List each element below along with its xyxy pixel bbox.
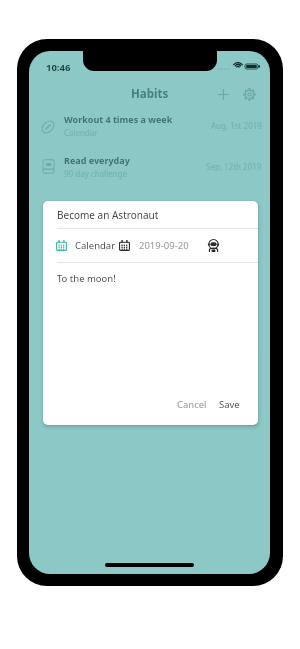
staticText: Save <box>219 398 240 411</box>
button[interactable]: Add habit <box>212 83 234 105</box>
button[interactable]: Cancel <box>172 395 212 414</box>
button[interactable]: Settings <box>238 83 260 105</box>
button[interactable]: Workout 4 times a week <box>29 105 270 145</box>
staticText: Read everyday <box>64 154 130 166</box>
staticText: Calendar <box>75 239 116 252</box>
staticText: 90 day challenge <box>64 168 128 179</box>
staticText: 2019-09-20 <box>139 239 189 252</box>
button[interactable]: Save <box>214 395 245 414</box>
staticText: Sep, 12th 2019 <box>206 161 262 172</box>
staticText: Become an Astronaut <box>57 208 159 222</box>
staticText: Cancel <box>177 398 207 411</box>
staticText: Workout 4 times a week <box>64 113 173 125</box>
staticText: To the moon! <box>57 272 116 285</box>
staticText: Calendar <box>64 127 98 138</box>
staticText: 10:46 <box>46 61 71 74</box>
staticText: Habits <box>131 86 169 102</box>
button[interactable]: Read everyday <box>29 146 270 186</box>
staticText: Aug, 1st 2019 <box>211 120 262 131</box>
